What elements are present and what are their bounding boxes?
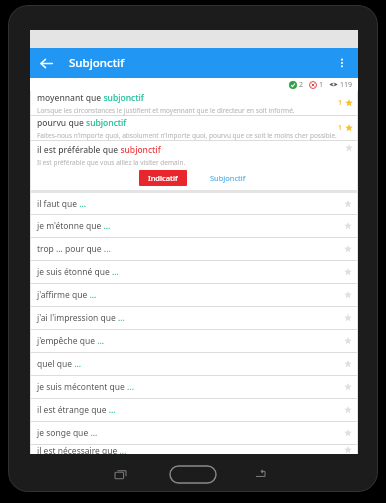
button[interactable]: je suis mécontent que ... [31, 376, 357, 398]
button[interactable]: quel que ... [31, 353, 357, 375]
button[interactable]: j'ai l'impression que ... [31, 307, 357, 329]
button[interactable]: il est étrange que ... [31, 399, 357, 421]
button[interactable]: Back [34, 51, 58, 75]
staticText: je suis mécontent que ... [37, 381, 344, 393]
staticText: je songe que ... [37, 427, 344, 439]
staticText: Indicatif [148, 173, 178, 183]
button[interactable]: je m'étonne que ... [31, 215, 357, 237]
staticText: 2 [299, 80, 304, 90]
staticText: Subjonctif [69, 55, 125, 71]
staticText: Il est préférable que vous alliez la vis… [37, 158, 186, 167]
button[interactable]: Back [256, 470, 267, 479]
staticText: moyennant que subjonctif [37, 92, 144, 104]
staticText: 119 [340, 80, 353, 90]
button[interactable]: Recents [115, 470, 126, 479]
button[interactable]: il est préférable que subjonctif [31, 141, 357, 190]
button[interactable]: il est nécessaire que ... [31, 445, 357, 454]
staticText: 1 [338, 123, 343, 133]
staticText: Subjonctif [210, 173, 246, 183]
staticText: quel que ... [37, 358, 344, 370]
staticText: Lorsque les circonstances le justifient … [37, 106, 295, 115]
staticText: 1 [338, 98, 343, 108]
button[interactable]: je suis étonné que ... [31, 261, 357, 283]
button[interactable]: j'empêche que ... [31, 330, 357, 352]
staticText: il est nécessaire que ... [37, 445, 344, 454]
button[interactable]: il faut que ... [31, 193, 357, 214]
staticText: trop ... pour que ... [37, 243, 344, 255]
button[interactable]: Home [170, 466, 216, 483]
staticText: Faites-nous n'importe quoi, absolument n… [37, 131, 337, 140]
staticText: il est étrange que ... [37, 404, 344, 416]
staticText: pourvu que subjonctif [37, 117, 127, 129]
staticText: j'affirme que ... [37, 289, 344, 301]
button[interactable]: moyennant que subjonctif [31, 91, 357, 115]
staticText: je m'étonne que ... [37, 220, 344, 232]
button[interactable]: je songe que ... [31, 422, 357, 444]
staticText: il est préférable que subjonctif [37, 144, 161, 156]
button[interactable]: pourvu que subjonctif [31, 116, 357, 140]
staticText: j'empêche que ... [37, 335, 344, 347]
button[interactable]: j'affirme que ... [31, 284, 357, 306]
button[interactable]: Indicatif [139, 170, 187, 186]
staticText: il faut que ... [37, 198, 344, 210]
button[interactable]: Subjonctif [205, 170, 251, 186]
staticText: je suis étonné que ... [37, 266, 344, 278]
staticText: 1 [319, 80, 324, 90]
button[interactable]: More options [330, 51, 354, 75]
button[interactable]: trop ... pour que ... [31, 238, 357, 260]
staticText: j'ai l'impression que ... [37, 312, 344, 324]
